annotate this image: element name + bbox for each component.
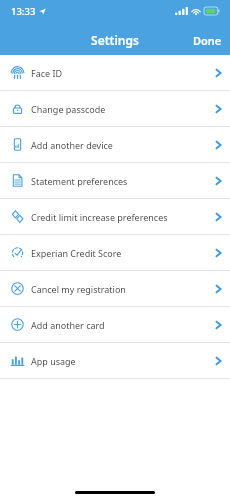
staticText: App usage — [31, 355, 215, 367]
staticText: Experian Credit Score — [31, 247, 215, 259]
button[interactable]: Face ID — [0, 55, 230, 90]
other: Open Credit limit increase preferences — [215, 211, 222, 223]
staticText: 13:33 — [11, 5, 36, 18]
other: Open Cancel my registration — [215, 283, 222, 295]
button[interactable]: Add another card — [0, 307, 230, 342]
button[interactable]: App usage — [0, 343, 230, 378]
staticText: Add another device — [31, 139, 215, 151]
other: Open Statement preferences — [215, 175, 222, 187]
staticText: Credit limit increase preferences — [31, 211, 215, 223]
staticText: Add another card — [31, 319, 215, 331]
staticText: Settings — [91, 32, 139, 48]
other: Open Add another device — [215, 139, 222, 151]
other: Open Face ID — [215, 67, 222, 79]
button[interactable]: Change passcode — [0, 91, 230, 126]
button[interactable]: Credit limit increase preferences — [0, 199, 230, 234]
staticText: Cancel my registration — [31, 283, 215, 295]
other: Open Add another card — [215, 319, 222, 331]
staticText: Done — [193, 33, 222, 48]
button[interactable]: Cancel my registration — [0, 271, 230, 306]
staticText: Face ID — [31, 67, 215, 79]
other: Open App usage — [215, 355, 222, 367]
other: Open Change passcode — [215, 103, 222, 115]
button[interactable]: Experian Credit Score — [0, 235, 230, 270]
other: Open Experian Credit Score — [215, 247, 222, 259]
button[interactable]: Done — [185, 29, 230, 52]
staticText: Statement preferences — [31, 175, 215, 187]
button[interactable]: Statement preferences — [0, 163, 230, 198]
staticText: Change passcode — [31, 103, 215, 115]
button[interactable]: Add another device — [0, 127, 230, 162]
